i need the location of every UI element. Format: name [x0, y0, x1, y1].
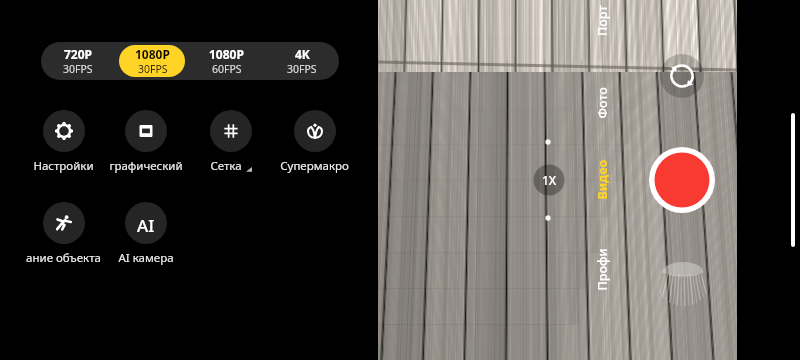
staticText: 60FPS [212, 62, 242, 76]
staticText: Порт [594, 5, 611, 36]
button[interactable]: Настройки [18, 110, 108, 180]
staticText: 30FPS [287, 62, 317, 76]
staticText: Фото [593, 86, 610, 118]
staticText: Настройки [33, 158, 94, 174]
button[interactable]: Фото [578, 70, 626, 134]
button[interactable]: графический [101, 110, 191, 180]
button[interactable]: 4K [268, 45, 335, 77]
staticText: 1080P [135, 46, 170, 62]
staticText: ание объекта [26, 250, 101, 266]
staticText: Профи [593, 248, 610, 290]
button[interactable]: Видео [578, 147, 626, 211]
staticText: графический [109, 158, 183, 174]
button[interactable]: Сетка [186, 110, 276, 180]
button[interactable]: ание объекта [18, 202, 108, 272]
button[interactable]: 1080P [193, 45, 260, 77]
button[interactable]: 720P [45, 45, 111, 77]
staticText: Сетка [210, 158, 242, 174]
button[interactable]: Супермакро [269, 110, 359, 180]
button[interactable]: Порт [578, 0, 626, 52]
staticText: 30FPS [138, 62, 168, 76]
staticText: 1X [542, 172, 557, 188]
staticText: AI камера [118, 250, 174, 266]
button[interactable]: AI [101, 202, 191, 272]
staticText: 1080P [209, 46, 244, 62]
button[interactable]: Профи [578, 237, 626, 301]
button[interactable]: Switch camera [660, 54, 704, 98]
staticText: Супермакро [280, 158, 349, 174]
button[interactable]: 1X [533, 164, 565, 196]
button[interactable]: 1080P [119, 45, 185, 77]
button[interactable]: Gallery [656, 253, 710, 307]
staticText: AI [137, 214, 155, 232]
staticText: 4K [295, 46, 310, 62]
staticText: 720P [64, 46, 93, 62]
staticText: 30FPS [63, 62, 93, 76]
staticText: Видео [593, 159, 610, 199]
button[interactable]: Record [648, 146, 716, 214]
